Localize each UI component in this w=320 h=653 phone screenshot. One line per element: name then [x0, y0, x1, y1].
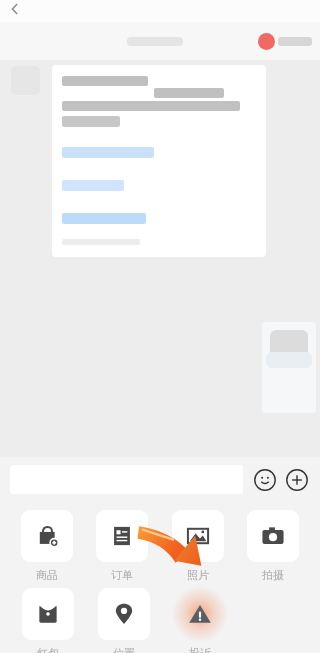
staticText: 投诉	[189, 646, 211, 653]
button[interactable]: 订单	[94, 508, 150, 582]
button[interactable]: 投诉	[172, 586, 228, 653]
staticText: 位置	[113, 646, 135, 653]
button[interactable]: 位置	[96, 586, 152, 653]
button[interactable]: 商品	[19, 508, 75, 582]
staticText: 订单	[111, 568, 133, 582]
button[interactable]: More	[284, 467, 310, 493]
button[interactable]: Emoji	[252, 467, 278, 493]
staticText: 照片	[187, 568, 209, 582]
button[interactable]	[258, 33, 312, 50]
button[interactable]: 红包	[20, 586, 76, 653]
button[interactable]: 拍摄	[245, 508, 301, 582]
staticText: 拍摄	[262, 568, 284, 582]
button[interactable]: 照片	[170, 508, 226, 582]
button[interactable]	[52, 65, 266, 257]
staticText: 商品	[36, 568, 58, 582]
button[interactable]	[262, 322, 316, 413]
staticText: 红包	[37, 646, 59, 653]
button[interactable]: Back	[6, 0, 24, 18]
